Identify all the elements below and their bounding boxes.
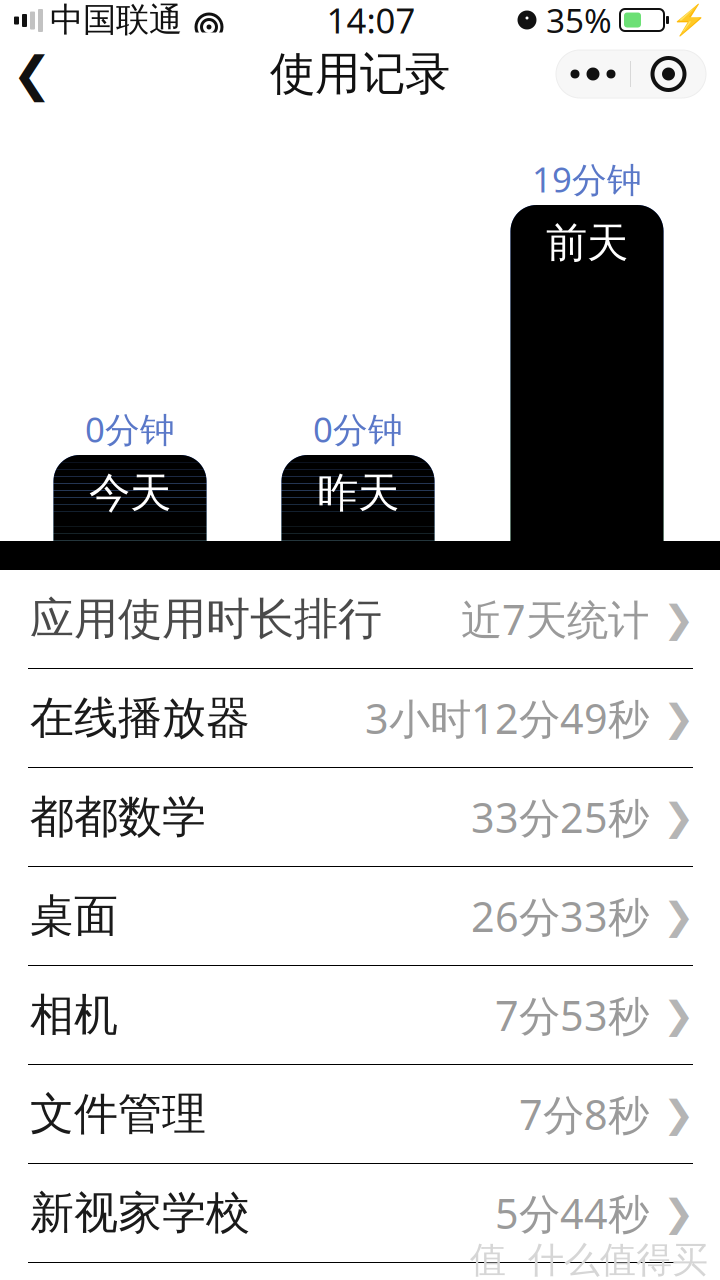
button[interactable]: 文件管理 (0, 1065, 720, 1163)
staticText: 中国联通 (50, 0, 182, 40)
staticText: 前天 (546, 218, 628, 268)
button[interactable]: 新视家学校 (0, 1164, 720, 1262)
staticText: 使用记录 (270, 46, 450, 102)
staticText: 33分25秒 (471, 790, 649, 844)
staticText: ⚡ (671, 3, 708, 37)
staticText: ❯ (663, 895, 694, 937)
button[interactable]: 相机 (0, 966, 720, 1064)
staticText: 相机 (30, 988, 118, 1042)
button[interactable]: Record (631, 50, 706, 98)
staticText: 5分44秒 (495, 1186, 649, 1240)
staticText: 19分钟 (532, 156, 642, 202)
staticText: 今天 (89, 468, 171, 518)
staticText: ❯ (663, 697, 694, 739)
staticText: ❯ (663, 598, 694, 640)
staticText: 7分8秒 (519, 1087, 649, 1141)
staticText: ❯ (663, 1192, 694, 1234)
button[interactable]: 在线播放器 (0, 669, 720, 767)
staticText: 近7天统计 (461, 592, 649, 646)
staticText: 7分53秒 (495, 988, 649, 1042)
button[interactable]: Back (0, 40, 64, 108)
staticText: 14:07 (326, 0, 415, 43)
staticText: 在线播放器 (30, 691, 250, 745)
staticText: 0分钟 (85, 406, 175, 452)
staticText: ❯ (663, 796, 694, 838)
staticText: 3小时12分49秒 (365, 691, 649, 745)
staticText: 0分钟 (313, 406, 403, 452)
staticText: 值 什么值得买 (470, 1238, 708, 1280)
staticText: ❯ (663, 994, 694, 1036)
staticText: 26分33秒 (471, 889, 649, 943)
staticText: 文件管理 (30, 1087, 206, 1141)
button[interactable]: 应用使用时长排行 (0, 570, 720, 668)
button[interactable]: 都都数学 (0, 768, 720, 866)
staticText: ❮ (12, 47, 52, 101)
staticText: 新视家学校 (30, 1186, 250, 1240)
staticText: 应用使用时长排行 (30, 592, 382, 646)
staticText: 桌面 (30, 889, 118, 943)
button[interactable]: 桌面 (0, 867, 720, 965)
staticText: ❯ (663, 1093, 694, 1135)
staticText: 都都数学 (30, 790, 206, 844)
staticText: 35% (546, 0, 612, 42)
staticText: 昨天 (317, 468, 399, 518)
button[interactable]: More (556, 50, 630, 98)
